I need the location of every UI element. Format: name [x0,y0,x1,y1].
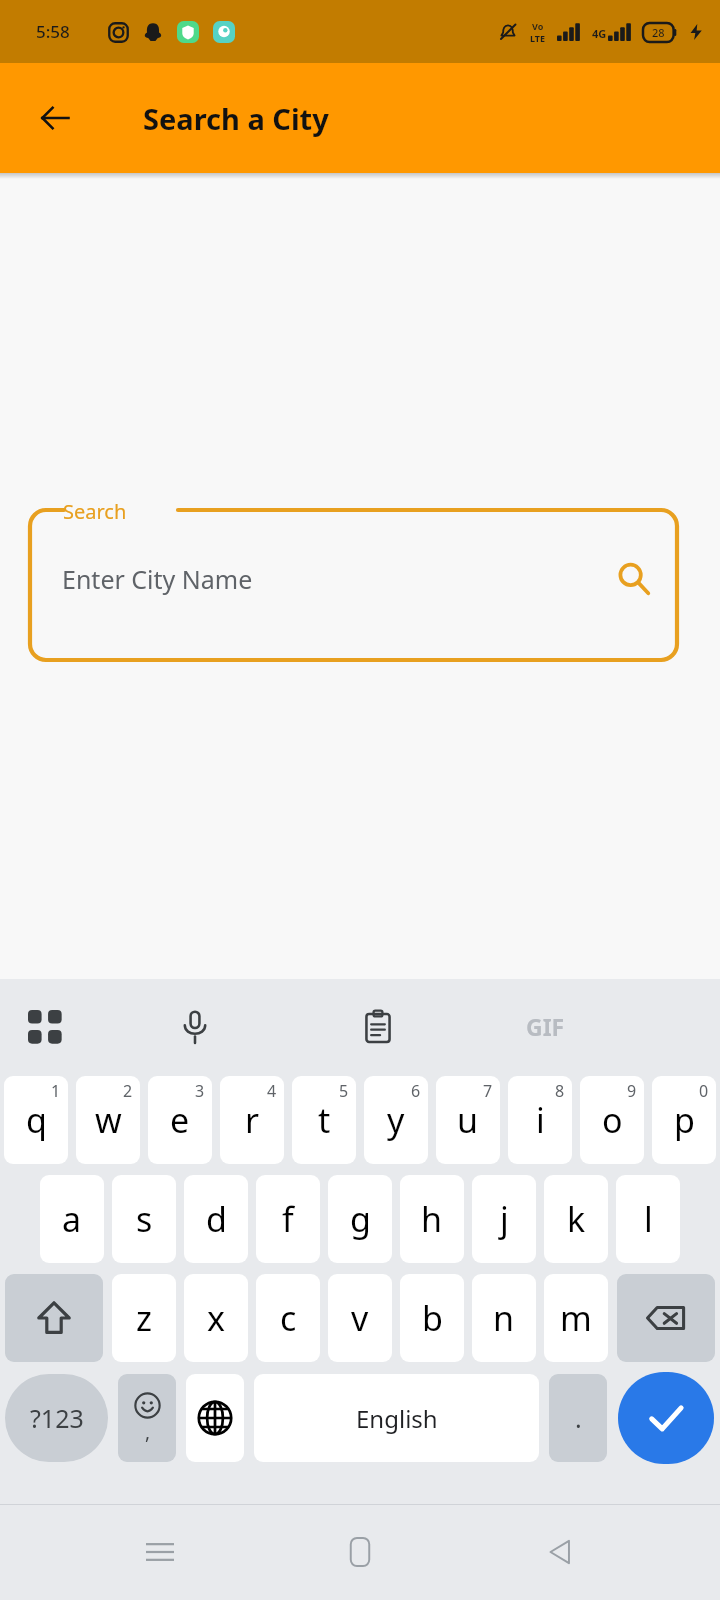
staticText: 3 [195,1080,205,1102]
button[interactable]: l [616,1175,680,1263]
button[interactable]: Enter City Name [30,498,677,660]
button[interactable]: Voice input [90,979,300,1074]
staticText: r [245,1097,260,1143]
staticText: y [387,1097,405,1143]
button[interactable]: b [400,1274,464,1362]
staticText: 4 [267,1080,277,1102]
staticText: x [207,1295,225,1341]
button[interactable]: Key [5,1274,103,1362]
button[interactable]: f [256,1175,320,1263]
staticText: 5:58 [36,20,70,43]
button[interactable]: . [549,1374,607,1462]
staticText: u [457,1097,479,1143]
button[interactable]: j [472,1175,536,1263]
staticText: t [318,1097,331,1143]
staticText: ?123 [30,1401,84,1435]
button[interactable]: Clipboard [300,979,455,1074]
button[interactable]: m [544,1274,608,1362]
button[interactable]: d [184,1175,248,1263]
button[interactable]: k [544,1175,608,1263]
button[interactable]: a [40,1175,104,1263]
staticText: j [500,1196,509,1242]
staticText: Vo [532,20,544,32]
staticText: 7 [483,1080,493,1102]
button[interactable]: e [148,1076,212,1164]
button[interactable]: n [472,1274,536,1362]
staticText: e [170,1097,190,1143]
staticText: 8 [555,1080,565,1102]
staticText: Search a City [143,99,329,138]
button[interactable]: ?123 [5,1374,108,1462]
button[interactable]: GIF [455,979,635,1074]
button[interactable]: Back [520,1512,600,1592]
staticText: 1 [51,1080,61,1102]
staticText: 28 [652,25,665,40]
button[interactable]: w [76,1076,140,1164]
button[interactable]: x [184,1274,248,1362]
staticText: z [136,1295,152,1341]
staticText: g [350,1196,371,1242]
staticText: , [145,1419,151,1445]
button[interactable]: i [508,1076,572,1164]
button[interactable]: Emoji [118,1374,176,1462]
button[interactable]: g [328,1175,392,1263]
button[interactable]: r [220,1076,284,1164]
staticText: n [493,1295,515,1341]
button[interactable]: u [436,1076,500,1164]
button[interactable]: Recents [120,1512,200,1592]
staticText: s [136,1196,153,1242]
staticText: Enter City Name [62,562,253,596]
button[interactable]: h [400,1175,464,1263]
button[interactable]: q [4,1076,68,1164]
staticText: c [280,1295,297,1341]
staticText: 0 [699,1080,709,1102]
staticText: l [644,1196,653,1242]
button[interactable]: s [112,1175,176,1263]
button[interactable]: Key [617,1274,715,1362]
button[interactable]: t [292,1076,356,1164]
staticText: 2 [123,1080,133,1102]
staticText: . [575,1401,582,1435]
button[interactable]: c [256,1274,320,1362]
button[interactable]: Back [24,87,86,149]
staticText: k [567,1196,586,1242]
staticText: m [560,1295,592,1341]
staticText: o [602,1097,623,1143]
staticText: 6 [411,1080,421,1102]
staticText: h [421,1196,443,1242]
button[interactable]: Submit [618,1372,714,1464]
staticText: English [356,1402,438,1435]
button[interactable]: Home [320,1512,400,1592]
staticText: LTE [530,32,546,44]
staticText: f [282,1196,294,1242]
staticText: i [536,1097,545,1143]
staticText: a [62,1196,82,1242]
button[interactable]: p [652,1076,716,1164]
staticText: d [206,1196,227,1242]
button[interactable]: o [580,1076,644,1164]
staticText: p [674,1097,695,1143]
button[interactable]: English [254,1374,539,1462]
staticText: q [26,1097,47,1143]
staticText: 4G [592,26,607,41]
staticText: 9 [627,1080,637,1102]
staticText: v [351,1295,369,1341]
button[interactable]: Change language [186,1374,244,1462]
button[interactable]: z [112,1274,176,1362]
staticText: w [95,1097,122,1143]
button[interactable]: y [364,1076,428,1164]
staticText: GIF [526,1011,565,1042]
button[interactable]: v [328,1274,392,1362]
staticText: 5 [339,1080,349,1102]
button[interactable]: Keyboard modes [0,979,90,1074]
staticText: Search [63,498,127,525]
staticText: b [422,1295,443,1341]
